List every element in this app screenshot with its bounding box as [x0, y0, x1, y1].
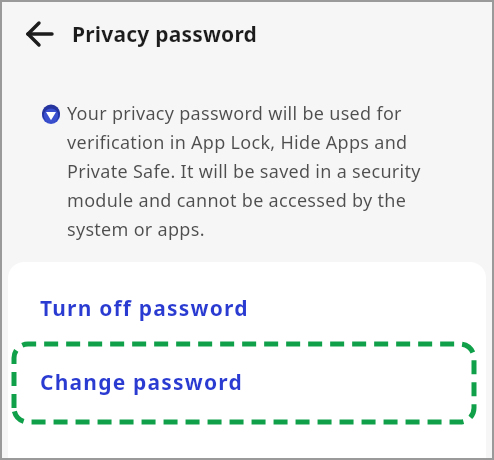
- staticText: Change password: [40, 368, 243, 397]
- staticText: Privacy password: [72, 20, 258, 49]
- staticText: Turn off password: [40, 294, 249, 323]
- button[interactable]: [20, 14, 60, 54]
- button[interactable]: Turn off password: [8, 262, 486, 354]
- button[interactable]: Change password: [8, 354, 486, 410]
- staticText: Your privacy password will be used for v…: [67, 101, 421, 241]
